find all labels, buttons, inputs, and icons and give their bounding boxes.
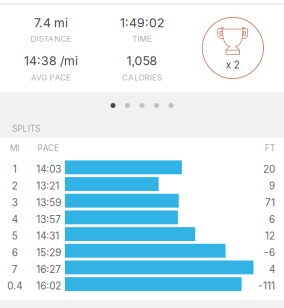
staticText: 15:29 <box>36 247 61 259</box>
staticText: AVG PACE <box>31 73 71 82</box>
staticText: 1:49:02 <box>120 15 164 30</box>
staticText: 3 <box>12 197 18 208</box>
staticText: 1,058 <box>126 53 157 68</box>
staticText: 14:38 /mi <box>24 53 78 68</box>
staticText: x 2 <box>226 59 240 71</box>
staticText: 4 <box>12 213 18 225</box>
staticText: 13:21 <box>36 180 59 192</box>
staticText: DISTANCE <box>30 34 72 44</box>
staticText: 71 <box>265 197 275 208</box>
button[interactable]: Achievements, 2 trophies <box>0 0 284 308</box>
staticText: 16:02 <box>36 280 61 292</box>
staticText: TIME <box>132 34 152 44</box>
staticText: 14:31 <box>36 230 59 242</box>
staticText: 4 <box>269 263 275 275</box>
staticText: 5 <box>12 230 18 242</box>
staticText: 20 <box>263 163 275 175</box>
staticText: PACE <box>37 143 59 153</box>
staticText: 0.4 <box>7 280 22 292</box>
staticText: -111 <box>258 280 275 292</box>
staticText: CALORIES <box>122 73 162 82</box>
staticText: 7.4 mi <box>34 15 68 30</box>
staticText: 9 <box>269 180 275 192</box>
staticText: FT <box>265 143 275 153</box>
staticText: 13:57 <box>36 213 61 225</box>
staticText: 6 <box>12 247 18 259</box>
staticText: 2 <box>12 180 18 192</box>
staticText: MI <box>10 143 19 153</box>
staticText: 6 <box>269 213 275 225</box>
staticText: -6 <box>264 247 275 259</box>
staticText: 1 <box>13 163 17 175</box>
staticText: 7 <box>12 263 18 275</box>
staticText: 12 <box>265 230 275 242</box>
staticText: 13:59 <box>36 197 61 208</box>
staticText: 14:03 <box>36 163 61 175</box>
staticText: SPLITS <box>12 124 40 134</box>
staticText: 16:27 <box>36 263 61 275</box>
